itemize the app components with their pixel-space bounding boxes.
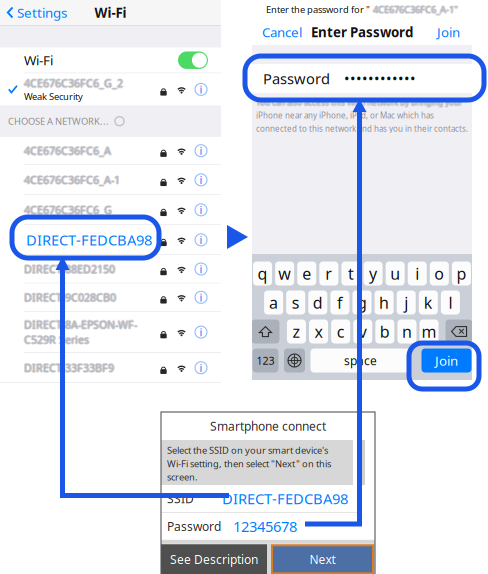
staticText: DIRECT-88ED2150 bbox=[24, 262, 115, 276]
staticText: Join bbox=[437, 23, 460, 41]
staticText: DIRECT-8A-EPSON-WF- bbox=[24, 318, 137, 332]
staticText: 123 bbox=[256, 353, 274, 368]
button[interactable]: space bbox=[310, 348, 410, 372]
button[interactable]: i bbox=[408, 261, 427, 285]
button[interactable]: p bbox=[452, 261, 471, 285]
staticText: screen. bbox=[167, 471, 198, 483]
button[interactable]: Join bbox=[421, 348, 471, 372]
button[interactable]: n bbox=[397, 319, 416, 343]
staticText: You can also access this Wi-Fi network b… bbox=[256, 97, 462, 108]
staticText: t bbox=[348, 263, 354, 284]
staticText: x bbox=[315, 321, 323, 342]
staticText: q bbox=[257, 263, 267, 284]
button[interactable]: DIRECT-9C028CB0 bbox=[0, 283, 221, 311]
staticText: DIRECT-9C028CB0 bbox=[24, 290, 116, 304]
staticText: i bbox=[415, 263, 419, 284]
staticText: e bbox=[302, 263, 311, 284]
button[interactable]: Join bbox=[437, 23, 472, 41]
button[interactable]: DIRECT-88ED2150 bbox=[0, 255, 221, 283]
staticText: Password bbox=[263, 69, 330, 88]
button[interactable]: 4CE676C36FC6_A-1 bbox=[0, 165, 221, 194]
staticText: DIRECT-8A-EPSON-WF- bbox=[25, 317, 138, 332]
staticText: 4CE676C36FC6_A-1" bbox=[373, 4, 458, 16]
button[interactable]: t bbox=[341, 261, 360, 285]
button[interactable]: w bbox=[275, 261, 294, 285]
button[interactable]: s bbox=[286, 290, 305, 314]
staticText: z bbox=[292, 321, 300, 342]
staticText: n bbox=[402, 321, 412, 342]
button[interactable]: e bbox=[297, 261, 316, 285]
button[interactable]: z bbox=[287, 319, 306, 343]
button[interactable]: Next bbox=[271, 544, 374, 574]
button[interactable]: 4CE676C36FC6_G bbox=[0, 195, 221, 224]
staticText: 4CE676C36FC6_A-1 bbox=[23, 173, 119, 187]
button[interactable]: y bbox=[363, 261, 382, 285]
staticText: SSID bbox=[167, 490, 194, 506]
staticText: connected to this network and has you in… bbox=[256, 123, 468, 134]
staticText: 4CE676C36FC6_A bbox=[23, 144, 110, 158]
staticText: g bbox=[357, 292, 367, 313]
button[interactable]: DIRECT-FEDCBA98 bbox=[0, 225, 221, 254]
button[interactable]: DIRECT-33F33BF9 bbox=[0, 353, 221, 382]
staticText: DIRECT-88ED2150 bbox=[25, 262, 116, 276]
button[interactable]: x bbox=[309, 319, 328, 343]
staticText: DIRECT-33F33BF9 bbox=[25, 361, 115, 375]
button[interactable]: o bbox=[430, 261, 449, 285]
button[interactable]: Shift bbox=[251, 319, 279, 343]
staticText: r bbox=[325, 263, 332, 284]
button[interactable]: a bbox=[264, 290, 283, 314]
staticText: i bbox=[199, 325, 202, 339]
staticText: DIRECT-9C028CB0 bbox=[25, 290, 117, 304]
staticText: 4CE676C36FC6_G_2 bbox=[25, 76, 124, 90]
staticText: You can also access this Wi-Fi network b… bbox=[257, 97, 463, 108]
staticText: 4CE676C36FC6_A-1 bbox=[24, 172, 120, 186]
button[interactable]: j bbox=[397, 290, 416, 314]
button[interactable]: Delete bbox=[445, 319, 472, 343]
button[interactable]: c bbox=[331, 319, 350, 343]
staticText: DIRECT-33F33BF9 bbox=[24, 361, 114, 375]
button[interactable]: 4CE676C36FC6_A bbox=[0, 137, 221, 164]
staticText: j bbox=[404, 292, 408, 313]
staticText: 4CE676C36FC6_A bbox=[25, 144, 112, 158]
staticText: DIRECT-88ED2150 bbox=[24, 261, 115, 275]
button[interactable]: DIRECT-8A-EPSON-WF- bbox=[0, 312, 221, 352]
staticText: DIRECT-9C028CB0 bbox=[24, 289, 116, 304]
button[interactable]: Cancel bbox=[252, 23, 302, 41]
staticText: 4CE676C36FC6_A-1" bbox=[373, 3, 458, 16]
staticText: Next bbox=[309, 551, 335, 567]
button[interactable]: Switch keyboard bbox=[284, 348, 305, 372]
button[interactable]: l bbox=[441, 290, 460, 314]
staticText: 4CE676C36FC6_G bbox=[24, 204, 112, 218]
staticText: i bbox=[199, 262, 202, 276]
button[interactable]: q bbox=[253, 261, 272, 285]
button[interactable]: v bbox=[353, 319, 372, 343]
staticText: DIRECT-8A-EPSON-WF- bbox=[23, 317, 136, 332]
staticText: DIRECT-88ED2150 bbox=[24, 263, 115, 277]
staticText: 4CE676C36FC6_A-1" bbox=[372, 3, 457, 16]
staticText: C529R Series bbox=[24, 333, 89, 347]
staticText: 4CE676C36FC6_G bbox=[23, 203, 111, 217]
button[interactable]: d bbox=[308, 290, 327, 314]
staticText: o bbox=[434, 263, 444, 284]
button[interactable]: g bbox=[352, 290, 371, 314]
button[interactable]: m bbox=[419, 319, 438, 343]
button[interactable]: k bbox=[419, 290, 438, 314]
button[interactable]: f bbox=[330, 290, 349, 314]
staticText: DIRECT-9C028CB0 bbox=[24, 291, 116, 305]
button[interactable]: u bbox=[386, 261, 405, 285]
button[interactable]: b bbox=[375, 319, 394, 343]
staticText: C529R Series bbox=[24, 332, 89, 346]
staticText: d bbox=[313, 292, 323, 313]
staticText: i bbox=[199, 361, 202, 375]
staticText: 4CE676C36FC6_G_2 bbox=[24, 75, 123, 89]
staticText: CHOOSE A NETWORK... bbox=[8, 115, 109, 127]
staticText: 4CE676C36FC6_A-1 bbox=[24, 174, 120, 188]
staticText: 4CE676C36FC6_G_2 bbox=[23, 76, 122, 90]
staticText: l bbox=[448, 292, 452, 313]
button[interactable]: Settings bbox=[0, 4, 67, 21]
button[interactable]: See Description bbox=[161, 544, 267, 574]
button[interactable]: r bbox=[319, 261, 338, 285]
button[interactable]: 123 bbox=[252, 348, 278, 372]
staticText: s bbox=[292, 292, 300, 313]
button[interactable]: h bbox=[375, 290, 394, 314]
